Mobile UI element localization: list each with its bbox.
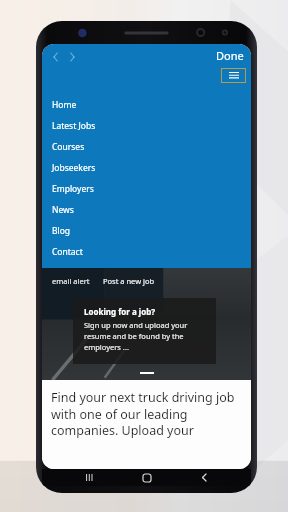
- button[interactable]: Back: [193, 469, 215, 486]
- button[interactable]: Find your next truck driving job with on…: [51, 389, 244, 438]
- button[interactable]: Courses: [42, 136, 251, 157]
- button[interactable]: Recents: [78, 469, 100, 486]
- staticText: LOG IN: [52, 267, 82, 279]
- staticText: Contact: [52, 246, 83, 258]
- staticText: News: [52, 204, 74, 216]
- button[interactable]: Looking for a job?: [73, 298, 216, 364]
- staticText: Jobseekers: [52, 162, 96, 174]
- staticText: Sign up now and upload your resume and b…: [84, 320, 188, 352]
- staticText: Done: [216, 48, 244, 63]
- button[interactable]: Post a new job: [103, 276, 155, 286]
- button[interactable]: Back: [48, 49, 64, 65]
- button[interactable]: Employers: [42, 178, 251, 199]
- button[interactable]: Forward: [64, 49, 80, 65]
- button[interactable]: Contact: [42, 241, 251, 262]
- staticText: Post a new job: [103, 276, 155, 286]
- button[interactable]: email alert: [52, 276, 90, 286]
- button[interactable]: Menu: [221, 68, 246, 83]
- button[interactable]: Home: [136, 469, 158, 486]
- button[interactable]: Latest Jobs: [42, 115, 251, 136]
- button[interactable]: News: [42, 199, 251, 220]
- staticText: Courses: [52, 141, 85, 153]
- button[interactable]: LOG IN: [42, 262, 251, 283]
- staticText: Employers: [52, 183, 94, 195]
- button[interactable]: Blog: [42, 220, 251, 241]
- button[interactable]: Done: [216, 48, 244, 63]
- staticText: email alert: [52, 276, 90, 286]
- staticText: Looking for a job?: [84, 306, 156, 317]
- button[interactable]: Home: [42, 94, 251, 115]
- staticText: Blog: [52, 225, 71, 237]
- staticText: Latest Jobs: [52, 120, 96, 132]
- staticText: Home: [52, 99, 77, 111]
- button[interactable]: Jobseekers: [42, 157, 251, 178]
